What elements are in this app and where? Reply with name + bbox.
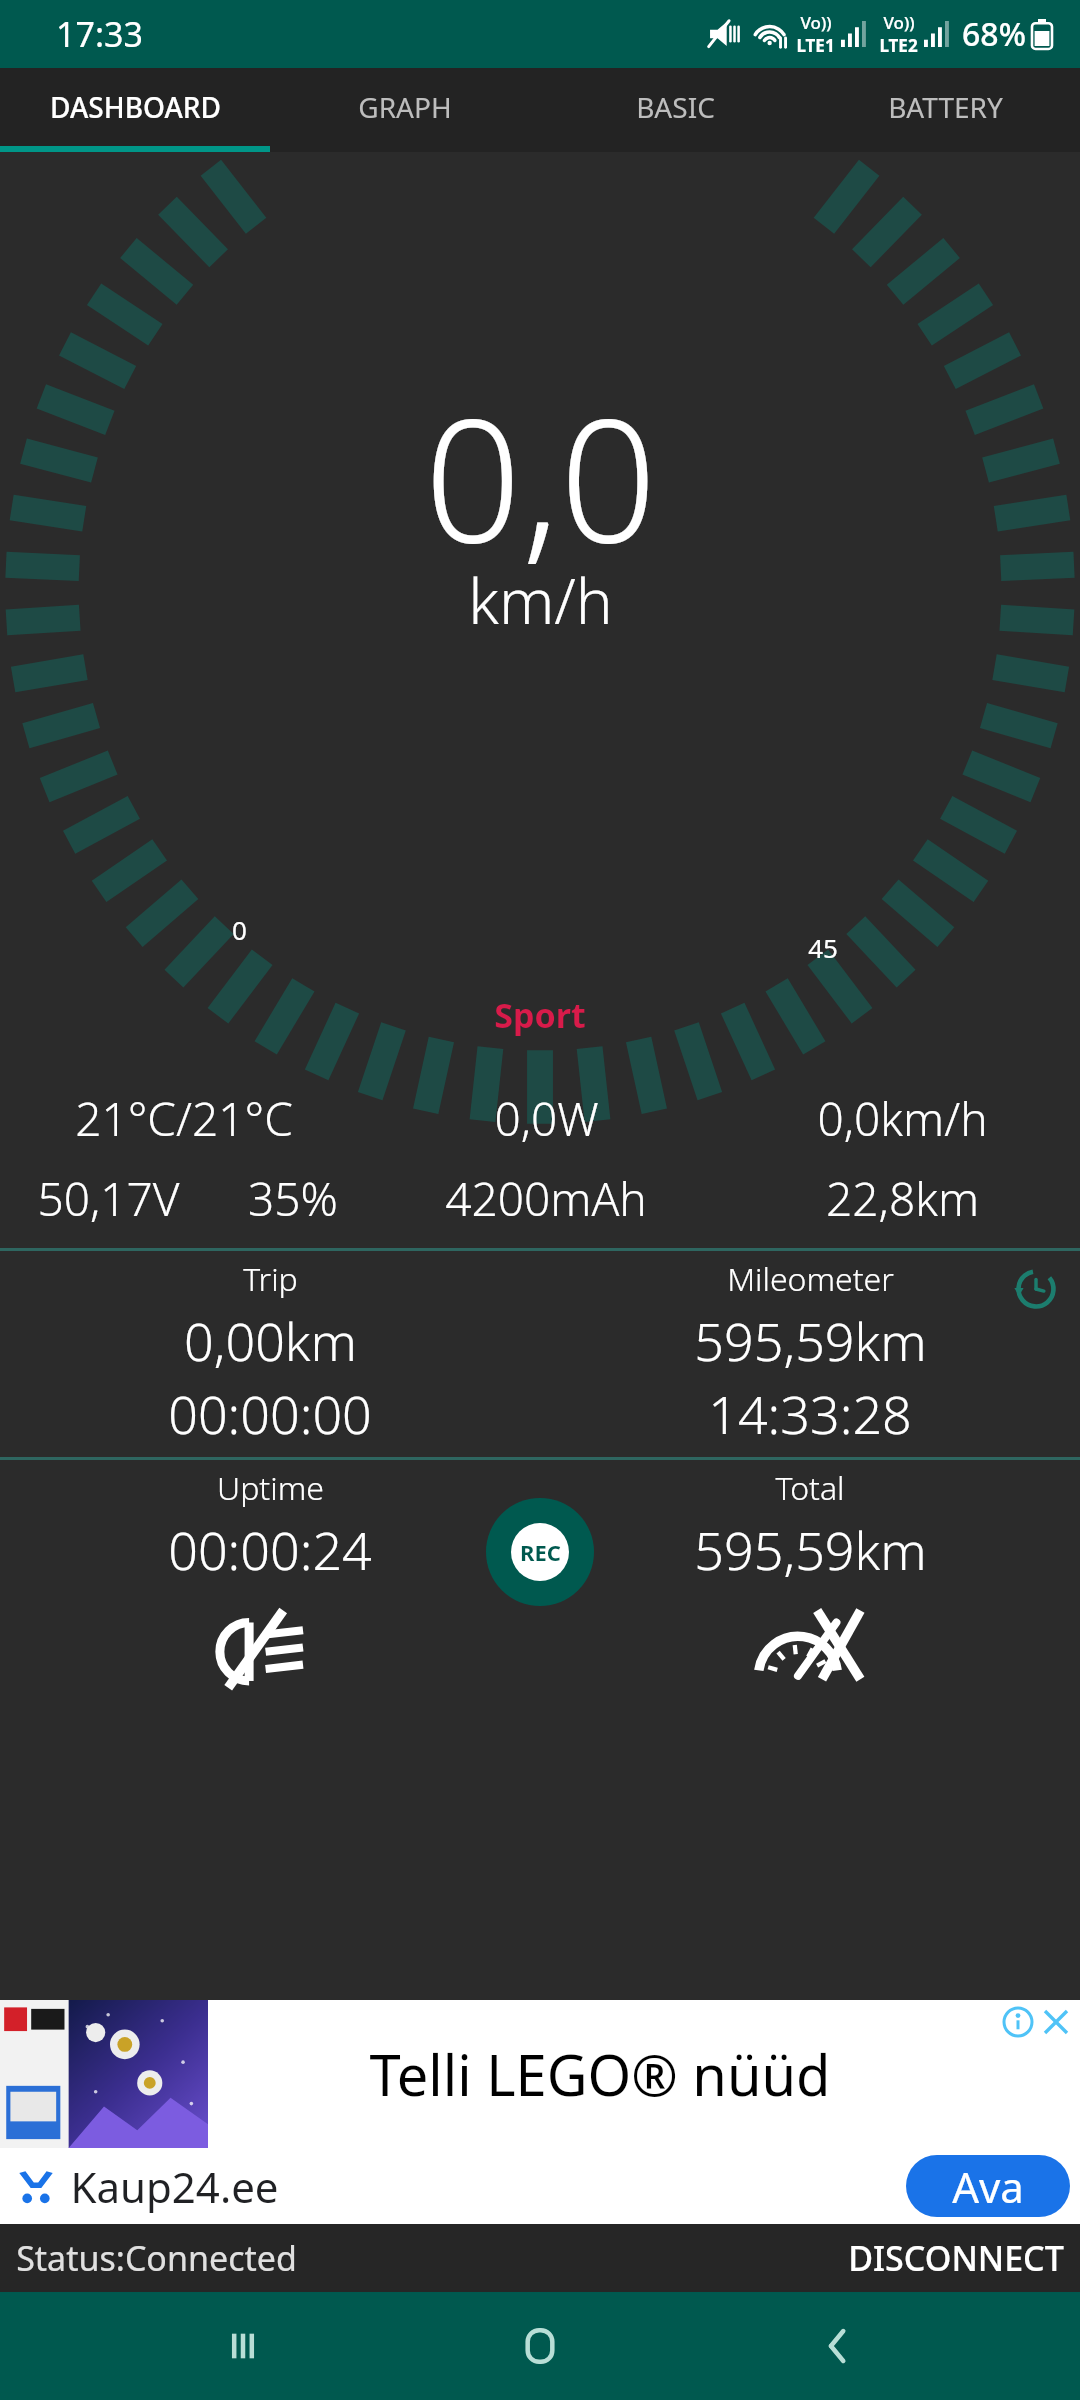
staticText: Telli LEGO® nüüd [369, 2036, 831, 2112]
button[interactable]: DISCONNECT [848, 2235, 1064, 2281]
staticText: 35% [248, 1167, 338, 1230]
staticText: 14:33:28 [708, 1378, 912, 1449]
staticText: 00:00:24 [168, 1514, 372, 1585]
staticText: 21°C/21°C [75, 1087, 293, 1150]
staticText: 68% [962, 12, 1026, 56]
button[interactable]: GRAPH [270, 68, 540, 146]
staticText: 595,59km [694, 1305, 927, 1376]
staticText: LTE2 [879, 34, 918, 57]
staticText: 0,0 [424, 360, 657, 592]
staticText: Sport [494, 992, 586, 1038]
staticText: 22,8km [826, 1167, 979, 1230]
button[interactable]: Back [783, 2292, 893, 2400]
staticText: Uptime [217, 1466, 324, 1510]
button[interactable]: Trip [0, 1257, 540, 1449]
staticText: LTE1 [796, 34, 835, 57]
button[interactable]: BASIC [540, 68, 810, 146]
staticText: DISCONNECT [848, 2235, 1064, 2281]
staticText: 0,0km/h [817, 1087, 988, 1150]
button[interactable]: BATTERY [810, 68, 1080, 146]
staticText: Status:Connected [16, 2235, 297, 2281]
staticText: BASIC [636, 88, 715, 126]
button[interactable]: History [1006, 1259, 1066, 1319]
button[interactable]: Recents [188, 2292, 298, 2400]
staticText: 0,0W [494, 1087, 599, 1150]
staticText: km/h [468, 558, 613, 642]
staticText: 00:00:00 [168, 1378, 372, 1449]
staticText: GRAPH [358, 88, 452, 126]
staticText: Kaup24.ee [70, 2158, 279, 2215]
staticText: BATTERY [888, 88, 1003, 126]
staticText: 595,59km [694, 1514, 927, 1585]
staticText: 50,17V [37, 1167, 180, 1230]
staticText: Ava [952, 2158, 1024, 2215]
button[interactable]: Record [486, 1498, 594, 1606]
staticText: 0 [232, 912, 247, 947]
button[interactable]: DASHBOARD [0, 68, 270, 146]
button[interactable]: Uptime [0, 1466, 540, 1693]
button[interactable]: Home [485, 2292, 595, 2400]
staticText: 0,00km [184, 1305, 357, 1376]
staticText: Total [775, 1466, 845, 1510]
staticText: 45 [808, 930, 838, 965]
staticText: Trip [243, 1257, 298, 1301]
staticText: Vo)) [800, 11, 832, 34]
other: Ad info [1004, 2008, 1032, 2036]
staticText: DASHBOARD [50, 88, 221, 126]
button[interactable]: Mileometer [540, 1257, 1080, 1449]
staticText: 17:33 [56, 11, 143, 57]
button[interactable]: Ava [906, 2155, 1070, 2217]
button[interactable]: Close ad [1042, 2008, 1070, 2036]
staticText: REC [520, 1537, 561, 1567]
staticText: Vo)) [883, 11, 915, 34]
staticText: Mileometer [727, 1257, 894, 1301]
button[interactable]: Total [540, 1466, 1080, 1693]
staticText: 4200mAh [445, 1167, 647, 1230]
